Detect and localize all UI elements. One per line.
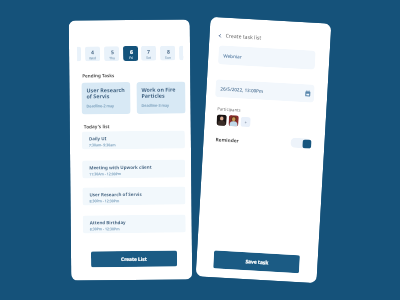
staticText: Deadline-3 may xyxy=(141,103,169,108)
staticText: 6 xyxy=(130,48,133,55)
staticText: 11:30Am - 12:00Pm xyxy=(89,171,121,176)
staticText: Thu xyxy=(109,56,115,60)
staticText: 7:30am- 9:30am xyxy=(89,142,116,147)
button[interactable]: 5 xyxy=(104,46,119,61)
staticText: Save task xyxy=(245,258,269,266)
button[interactable]: Attend Birthday xyxy=(83,214,186,233)
button[interactable]: 4 xyxy=(85,46,100,61)
staticText: Work on Fire Particles xyxy=(141,85,180,100)
staticText: 4 xyxy=(91,48,94,55)
staticText: Meeting with Upwork client xyxy=(89,164,152,170)
staticText: Sun xyxy=(165,56,171,60)
staticText: Today's list xyxy=(84,123,110,129)
staticText: 7 xyxy=(147,48,150,55)
staticText: Fri xyxy=(129,56,133,60)
staticText: User Research of Servis xyxy=(89,191,142,197)
staticText: 26/5/2022, 13:00Pm xyxy=(220,85,264,94)
staticText: User Research of Servis xyxy=(86,86,125,100)
staticText: Attend Birthday xyxy=(90,219,126,225)
button[interactable]: User Research of Servis xyxy=(82,186,186,205)
button[interactable]: Webniar xyxy=(218,45,316,70)
button[interactable]: Save task xyxy=(213,250,300,273)
button[interactable]: 6 xyxy=(123,46,138,61)
button[interactable]: 8 xyxy=(160,46,175,61)
button[interactable]: Add participant xyxy=(240,117,251,127)
staticText: 8 xyxy=(167,48,170,55)
button[interactable]: 3 xyxy=(77,46,81,61)
button[interactable]: Meeting with Upwork client xyxy=(82,159,185,178)
staticText: Participants xyxy=(217,106,241,114)
staticText: Create List xyxy=(121,256,147,263)
button[interactable]: 7 xyxy=(141,46,156,61)
button[interactable]: Create List xyxy=(91,251,177,267)
staticText: Create task list xyxy=(225,32,262,41)
staticText: Daily UI xyxy=(89,135,107,141)
staticText: Sat xyxy=(146,56,151,60)
staticText: Webniar xyxy=(223,52,242,60)
button[interactable]: Reminder toggle xyxy=(290,137,312,149)
staticText: + xyxy=(244,120,248,125)
button[interactable]: Work on Fire Particles xyxy=(136,81,186,114)
staticText: Wed xyxy=(89,56,96,60)
button[interactable]: Back xyxy=(216,32,223,38)
staticText: 8:30Pm - 12:30Pm xyxy=(90,226,120,231)
staticText: Reminder xyxy=(215,136,240,145)
staticText: 5 xyxy=(111,48,114,55)
button[interactable]: User Research of Servis xyxy=(81,82,131,114)
button[interactable]: Daily UI xyxy=(82,130,185,149)
button[interactable]: 9 xyxy=(179,45,183,60)
staticText: 8:30Pm - 12:30Pm xyxy=(89,198,119,203)
staticText: Pending Tasks xyxy=(82,72,115,78)
staticText: Deadline-2 may xyxy=(87,103,115,108)
button[interactable]: 26/5/2022, 13:00Pm xyxy=(215,79,315,103)
